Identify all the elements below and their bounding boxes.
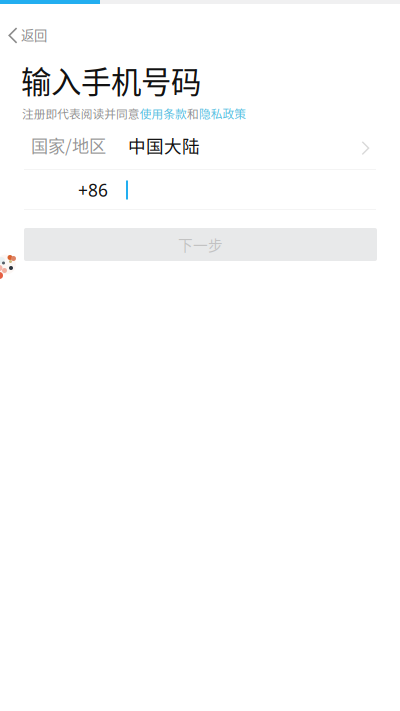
staticText: 国家/地区 bbox=[31, 132, 106, 157]
staticText: 使用条款 bbox=[140, 105, 187, 122]
staticText: 中国大陆 bbox=[128, 132, 200, 158]
button[interactable]: 国家/地区 bbox=[0, 125, 400, 165]
staticText: 和 bbox=[187, 105, 199, 122]
staticText: 返回 bbox=[21, 25, 47, 44]
staticText: +86 bbox=[78, 178, 108, 201]
button[interactable]: 下一步 bbox=[24, 228, 377, 261]
button[interactable]: 返回 bbox=[0, 20, 61, 51]
staticText: 下一步 bbox=[178, 234, 223, 255]
button[interactable]: 手机号码 bbox=[0, 170, 400, 210]
staticText: 输入手机号码 bbox=[21, 58, 201, 102]
button[interactable]: 隐私政策 bbox=[199, 105, 246, 122]
button[interactable]: 使用条款 bbox=[140, 105, 187, 122]
staticText: 隐私政策 bbox=[199, 105, 246, 122]
staticText: 注册即代表阅读并同意 bbox=[22, 105, 140, 122]
